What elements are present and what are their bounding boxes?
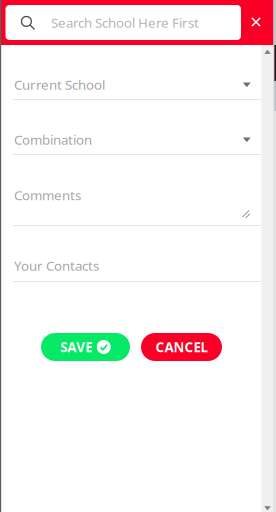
staticText: Combination <box>14 131 92 148</box>
button[interactable]: Close search <box>241 7 271 37</box>
staticText: Current School <box>14 76 105 93</box>
staticText: Your Contacts <box>14 257 99 274</box>
button[interactable]: SAVE <box>41 333 130 361</box>
button[interactable]: CANCEL <box>141 333 222 361</box>
staticText: CANCEL <box>155 338 207 356</box>
staticText: SAVE <box>60 338 92 356</box>
staticText: Search School Here First <box>51 14 199 31</box>
staticText: Comments <box>14 186 81 204</box>
